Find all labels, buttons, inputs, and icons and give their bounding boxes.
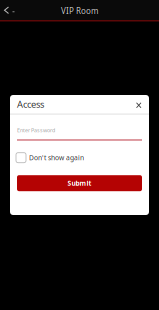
staticText: Don't show again xyxy=(29,153,84,162)
button[interactable]: Don't show again xyxy=(16,153,84,163)
staticText: Enter Password xyxy=(17,127,55,134)
staticText: VIP Room xyxy=(61,6,98,16)
button[interactable]: Back xyxy=(0,0,19,20)
button[interactable]: Submit xyxy=(17,175,142,191)
staticText: Access xyxy=(17,98,44,110)
secureTextField[interactable]: Enter Password xyxy=(10,115,149,141)
button[interactable]: Close xyxy=(133,99,144,110)
staticText: Submit xyxy=(67,179,91,188)
